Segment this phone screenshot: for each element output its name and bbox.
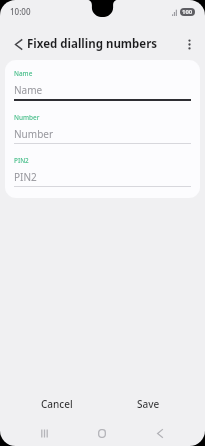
staticText: Cancel — [41, 397, 73, 411]
button[interactable]: PIN2 — [14, 156, 191, 187]
staticText: PIN2 — [14, 170, 37, 184]
button[interactable]: Navigate up — [7, 33, 29, 55]
button[interactable]: Number — [14, 113, 191, 144]
staticText: Name — [14, 69, 33, 78]
staticText: 100 — [182, 8, 193, 16]
staticText: PIN2 — [14, 156, 29, 165]
staticText: Save — [137, 397, 160, 411]
staticText: 10:00 — [10, 6, 31, 17]
staticText: Number — [14, 127, 54, 141]
button[interactable]: Home — [73, 425, 131, 441]
staticText: Number — [14, 113, 40, 122]
button[interactable]: Save — [102, 392, 194, 416]
button[interactable]: Back — [131, 425, 189, 441]
button[interactable]: Cancel — [11, 392, 102, 416]
button[interactable]: Name — [14, 69, 191, 101]
button[interactable]: Recent apps — [16, 425, 73, 441]
staticText: Fixed dialling numbers — [27, 36, 158, 52]
staticText: Name — [14, 83, 43, 97]
button[interactable]: More options — [178, 33, 200, 55]
